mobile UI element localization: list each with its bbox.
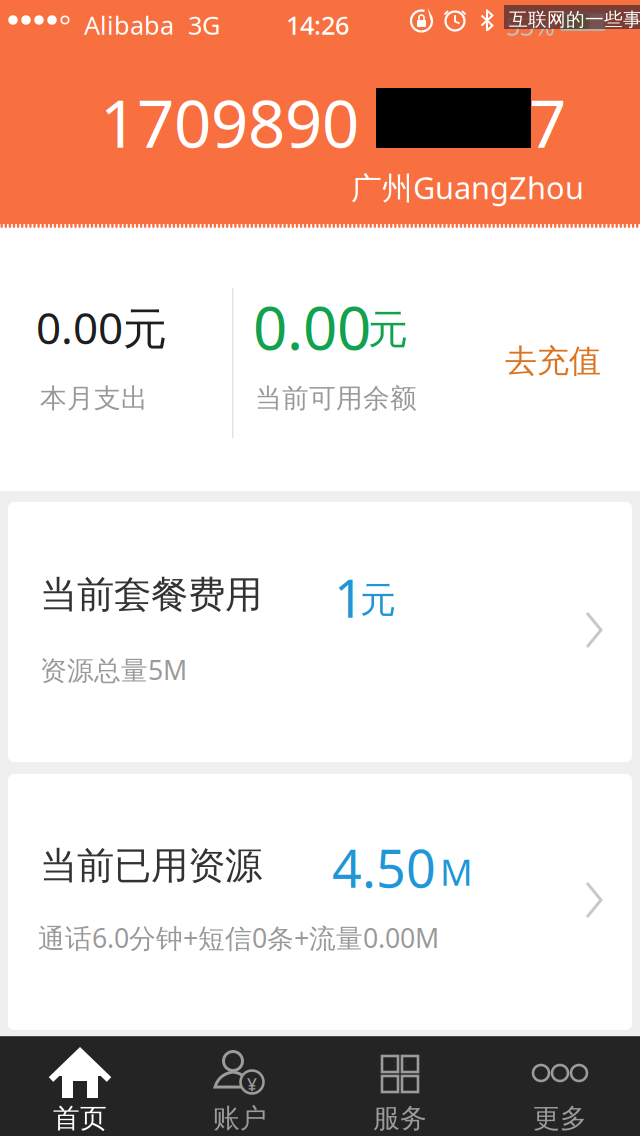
staticText: 3G (188, 8, 220, 42)
staticText: 通话6.0分钟+短信0条+流量0.00M (38, 920, 439, 955)
staticText: 当前套餐费用 (40, 572, 262, 618)
staticText: 1709890 (100, 79, 359, 166)
staticText: M (440, 848, 473, 896)
staticText: 7 (529, 79, 566, 166)
button[interactable]: 首页 (0, 1036, 160, 1136)
staticText: 元 (360, 578, 396, 622)
staticText: 资源总量5M (40, 652, 187, 687)
staticText: Alibaba (84, 8, 174, 42)
button[interactable]: 当前已用资源 (8, 774, 632, 1030)
staticText: 更多 (533, 1102, 587, 1135)
staticText: 0.00元 (36, 298, 167, 356)
button[interactable]: 服务 (320, 1036, 480, 1136)
button[interactable]: ¥ (160, 1036, 320, 1136)
staticText: 53% (506, 9, 555, 43)
staticText: 账户 (213, 1102, 267, 1135)
staticText: ¥ (247, 1073, 257, 1096)
button[interactable]: 当前套餐费用 (8, 502, 632, 762)
staticText: 广州GuangZhou (351, 167, 584, 208)
staticText: 1 (334, 563, 364, 632)
staticText: 元 (368, 305, 408, 354)
staticText: 0.00 (253, 287, 371, 367)
staticText: 4.50 (332, 833, 436, 902)
staticText: 首页 (53, 1102, 107, 1135)
staticText: 去充值 (505, 341, 601, 381)
staticText: 互联网的一些事 (509, 8, 640, 31)
staticText: 当前可用余额 (255, 382, 417, 415)
button[interactable]: 更多 (480, 1036, 640, 1136)
staticText: 14:26 (286, 8, 349, 42)
button[interactable]: 去充值 (488, 336, 618, 386)
staticText: 当前已用资源 (40, 843, 262, 889)
staticText: 本月支出 (40, 382, 148, 415)
staticText: 服务 (373, 1102, 427, 1135)
